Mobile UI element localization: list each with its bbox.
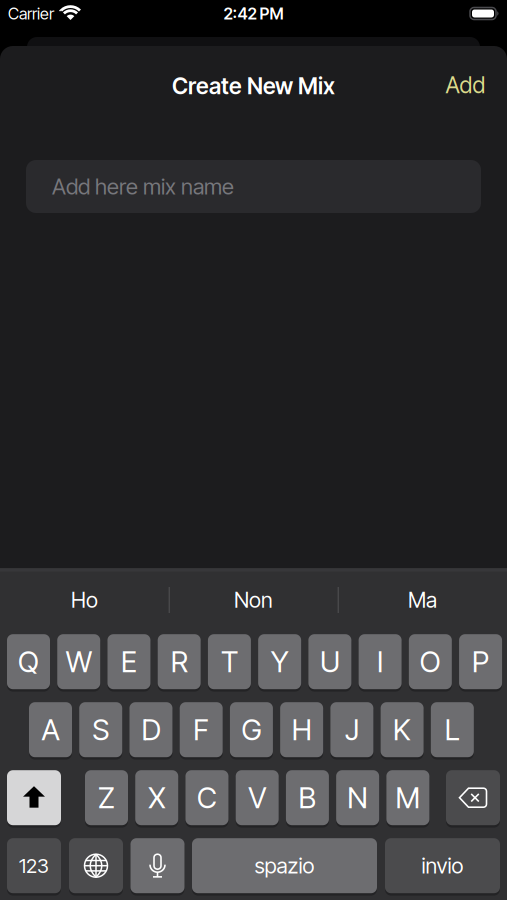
button[interactable]: Q [7,634,50,691]
button[interactable]: E [107,634,150,691]
staticText: spazio [254,853,314,879]
button[interactable]: Non [193,580,313,620]
button[interactable]: X [135,770,178,827]
button[interactable]: Ho [24,580,144,620]
staticText: V [248,780,266,815]
button[interactable]: H [280,702,323,759]
button[interactable]: Ma [362,580,482,620]
staticText: invio [421,853,463,879]
button[interactable]: U [308,634,351,691]
staticText: Carrier [8,4,54,23]
button[interactable]: W [57,634,100,691]
staticText: R [171,644,188,679]
button[interactable]: V [236,770,279,827]
button[interactable]: L [431,702,474,759]
staticText: Q [18,644,39,679]
button[interactable]: S [79,702,122,759]
staticText: M [395,780,420,815]
staticText: I [377,644,383,679]
staticText: G [241,712,261,747]
staticText: T [221,644,238,679]
button[interactable]: Add [445,71,485,99]
button[interactable] [446,770,500,827]
button[interactable]: P [459,634,502,691]
staticText: Add [445,71,485,99]
staticText: L [445,712,460,747]
button[interactable]: D [129,702,172,759]
button[interactable]: A [29,702,72,759]
staticText: F [193,712,209,747]
staticText: Add here mix name [52,173,234,200]
staticText: O [420,644,441,679]
staticText: D [141,712,160,747]
button[interactable]: 123 [7,838,61,895]
staticText: W [66,644,92,679]
staticText: B [298,780,316,815]
button[interactable] [7,770,61,827]
button[interactable]: F [180,702,223,759]
staticText: J [345,712,359,747]
staticText: E [121,644,137,679]
button[interactable]: Add here mix name [26,160,481,213]
button[interactable]: R [158,634,201,691]
staticText: X [148,780,165,815]
staticText: Ho [71,587,98,613]
staticText: P [472,644,489,679]
staticText: Ma [408,587,437,613]
staticText: U [320,644,340,679]
button[interactable]: O [409,634,452,691]
button[interactable]: Y [258,634,301,691]
button[interactable]: Z [85,770,128,827]
button[interactable]: I [359,634,402,691]
button[interactable]: G [230,702,273,759]
staticText: Non [234,587,273,613]
button[interactable]: spazio [192,838,377,895]
button[interactable]: J [330,702,373,759]
button[interactable]: K [381,702,424,759]
staticText: N [347,780,368,815]
staticText: S [92,712,109,747]
button[interactable]: T [208,634,251,691]
staticText: 123 [19,854,49,878]
button[interactable]: C [185,770,228,827]
staticText: H [292,712,312,747]
staticText: Z [98,780,115,815]
staticText: Create New Mix [172,72,335,100]
staticText: Y [271,644,289,679]
staticText: A [41,712,59,747]
button[interactable] [130,838,184,895]
button[interactable]: M [386,770,429,827]
staticText: C [197,780,217,815]
button[interactable]: N [336,770,379,827]
button[interactable] [69,838,123,895]
button[interactable]: B [286,770,329,827]
staticText: K [393,712,411,747]
button[interactable]: invio [385,838,500,895]
staticText: 2:42 PM [223,4,283,23]
